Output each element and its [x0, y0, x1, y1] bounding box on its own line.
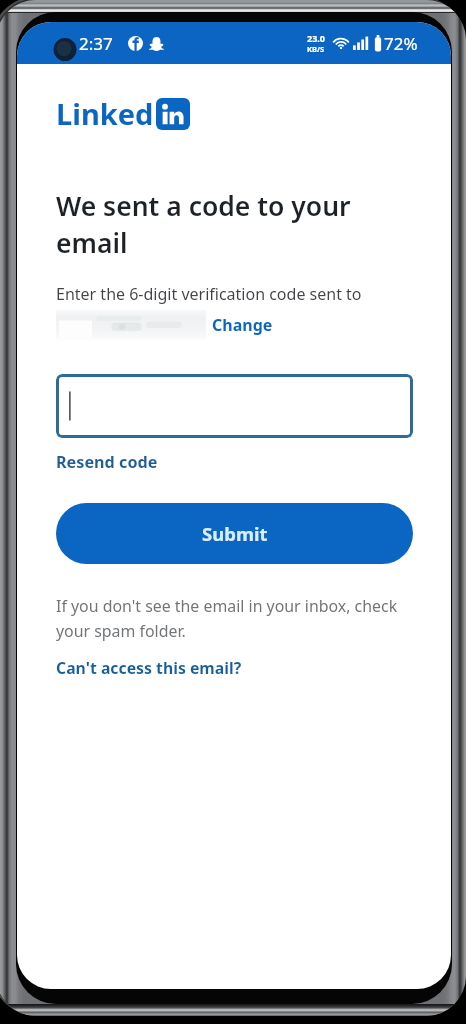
staticText: We sent a code to your email	[56, 188, 413, 261]
staticText: 2:37	[79, 32, 113, 55]
staticText: Submit	[202, 521, 268, 546]
button[interactable]: Can't access this email?	[56, 657, 242, 679]
staticText: Change	[212, 314, 273, 336]
staticText: If you don't see the email in your inbox…	[56, 595, 413, 641]
staticText: Linked	[56, 94, 154, 133]
button[interactable]: Resend code	[56, 451, 158, 473]
staticText: Enter the 6-digit verification code sent…	[56, 283, 362, 305]
staticText: KB/S	[307, 44, 325, 54]
button[interactable]: Submit	[56, 503, 413, 564]
button[interactable]: Change	[212, 314, 273, 336]
staticText: 72%	[384, 32, 418, 55]
staticText: Can't access this email?	[56, 657, 242, 679]
button[interactable]	[56, 374, 413, 438]
staticText: Resend code	[56, 451, 158, 473]
staticText: 23.0	[307, 32, 325, 44]
